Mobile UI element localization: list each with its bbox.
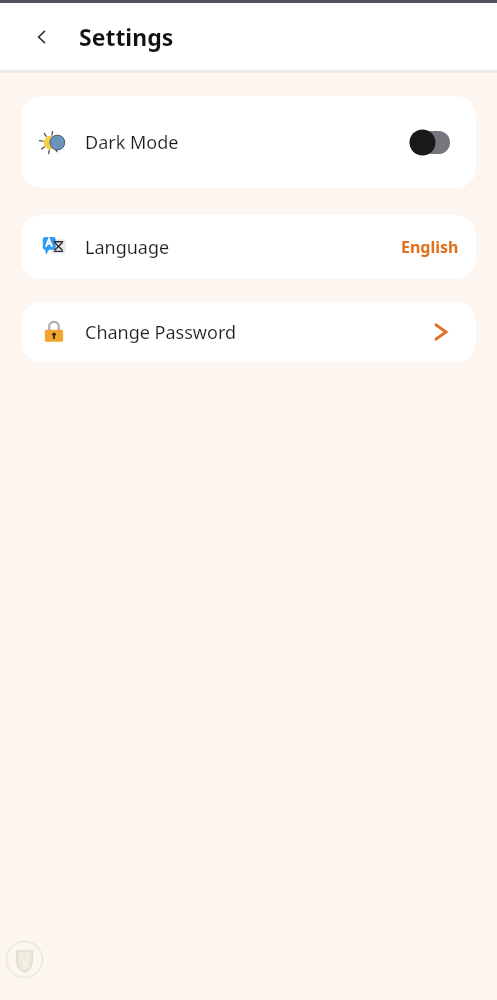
button[interactable]: Back xyxy=(28,23,56,51)
staticText: English xyxy=(401,236,459,258)
button[interactable]: Dark Mode toggle xyxy=(410,131,450,154)
staticText: Language xyxy=(85,235,170,260)
staticText: Change Password xyxy=(85,320,237,345)
staticText: Dark Mode xyxy=(85,130,179,155)
staticText: Settings xyxy=(79,21,174,52)
button[interactable]: Language xyxy=(21,215,476,279)
button[interactable]: Change Password xyxy=(21,302,476,362)
button[interactable]: Dark Mode xyxy=(21,96,476,188)
